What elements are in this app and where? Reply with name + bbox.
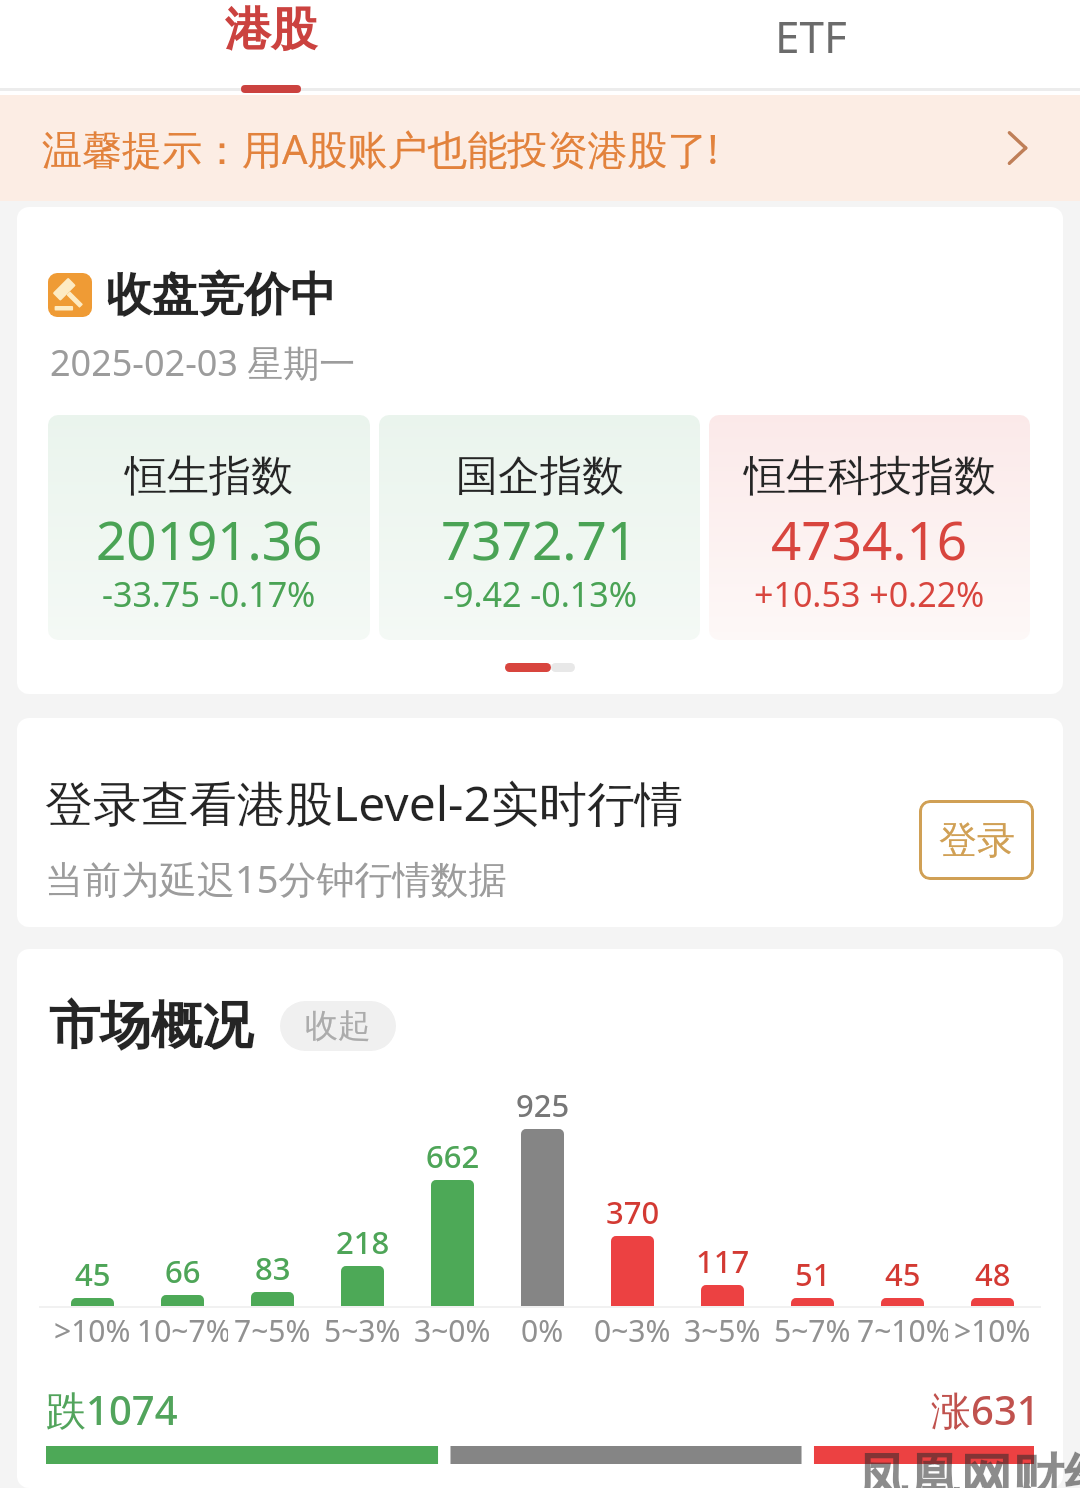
staticText: 收盘竞价中 [106, 266, 336, 324]
staticText: 市场概况 [49, 994, 253, 1058]
staticText: 恒生科技指数 [744, 450, 996, 503]
staticText: 0% [521, 1310, 564, 1351]
staticText: 370 [606, 1191, 660, 1233]
staticText: 45 [885, 1253, 921, 1295]
button[interactable]: 收起 [280, 1001, 396, 1051]
staticText: 登录查看港股Level-2实时行情 [45, 770, 684, 836]
staticText: +10.53 +0.22% [754, 571, 985, 617]
button[interactable]: 恒生科技指数 [709, 415, 1030, 640]
staticText: 51 [795, 1253, 831, 1295]
staticText: 4734.16 [771, 503, 968, 575]
staticText: 0~3% [594, 1310, 671, 1351]
staticText: 跌1074 [46, 1382, 178, 1437]
staticText: 凤凰网财经 [856, 1446, 1080, 1488]
staticText: 662 [426, 1135, 480, 1177]
staticText: 温馨提示：用A股账户也能投资港股了! [42, 121, 719, 176]
staticText: 恒生指数 [125, 450, 293, 503]
staticText: 3~5% [684, 1310, 761, 1351]
button[interactable]: 恒生指数 [48, 415, 370, 640]
button[interactable]: ETF [731, 0, 891, 95]
staticText: >10% [54, 1310, 131, 1351]
staticText: 117 [696, 1240, 750, 1282]
staticText: 2025-02-03 星期一 [50, 338, 356, 387]
staticText: 7372.71 [441, 503, 638, 575]
staticText: 收起 [305, 1005, 371, 1047]
staticText: 登录 [939, 816, 1015, 864]
staticText: 20191.36 [96, 503, 323, 575]
button[interactable]: 温馨提示：用A股账户也能投资港股了! [0, 95, 1080, 201]
staticText: >10% [954, 1310, 1031, 1351]
staticText: 10~7% [137, 1310, 228, 1351]
staticText: 7~10% [857, 1310, 948, 1351]
staticText: 港股 [225, 1, 317, 59]
staticText: 5~7% [774, 1310, 851, 1351]
staticText: 3~0% [414, 1310, 491, 1351]
button[interactable]: 港股 [191, 0, 351, 95]
staticText: 国企指数 [456, 450, 624, 503]
button[interactable]: 登录 [919, 800, 1034, 880]
staticText: -9.42 -0.13% [443, 571, 637, 617]
staticText: 5~3% [324, 1310, 401, 1351]
staticText: 7~5% [234, 1310, 311, 1351]
staticText: 925 [516, 1084, 570, 1126]
staticText: 48 [975, 1253, 1011, 1295]
staticText: 当前为延迟15分钟行情数据 [45, 852, 507, 904]
other: More [1006, 131, 1040, 165]
button[interactable]: 国企指数 [379, 415, 700, 640]
staticText: 218 [336, 1221, 390, 1263]
staticText: 45 [75, 1253, 111, 1295]
staticText: ETF [775, 6, 847, 66]
staticText: 涨631 [931, 1382, 1040, 1437]
staticText: -33.75 -0.17% [102, 571, 316, 617]
staticText: 66 [165, 1250, 201, 1292]
staticText: 83 [255, 1247, 291, 1289]
